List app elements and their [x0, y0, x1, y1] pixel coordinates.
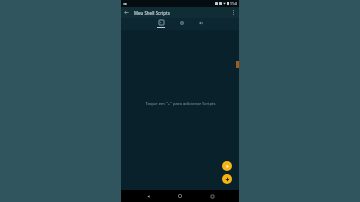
button[interactable]: Add script [222, 174, 232, 184]
button[interactable]: Sound tab [197, 20, 205, 28]
button[interactable]: Scripts tab [155, 19, 167, 29]
staticText: Meu Shell Scripts [134, 10, 228, 16]
button[interactable]: Back [143, 191, 153, 201]
staticText: 11:4 [230, 1, 237, 6]
staticText: Toque em "+" para adicionar Scripts [145, 101, 216, 107]
button[interactable]: Run script [222, 161, 232, 171]
button[interactable]: Recent apps [207, 191, 217, 201]
button[interactable]: Back [121, 7, 132, 18]
button[interactable]: Home [175, 191, 185, 201]
button[interactable]: Settings tab [178, 20, 186, 28]
button[interactable]: More options [228, 7, 239, 18]
